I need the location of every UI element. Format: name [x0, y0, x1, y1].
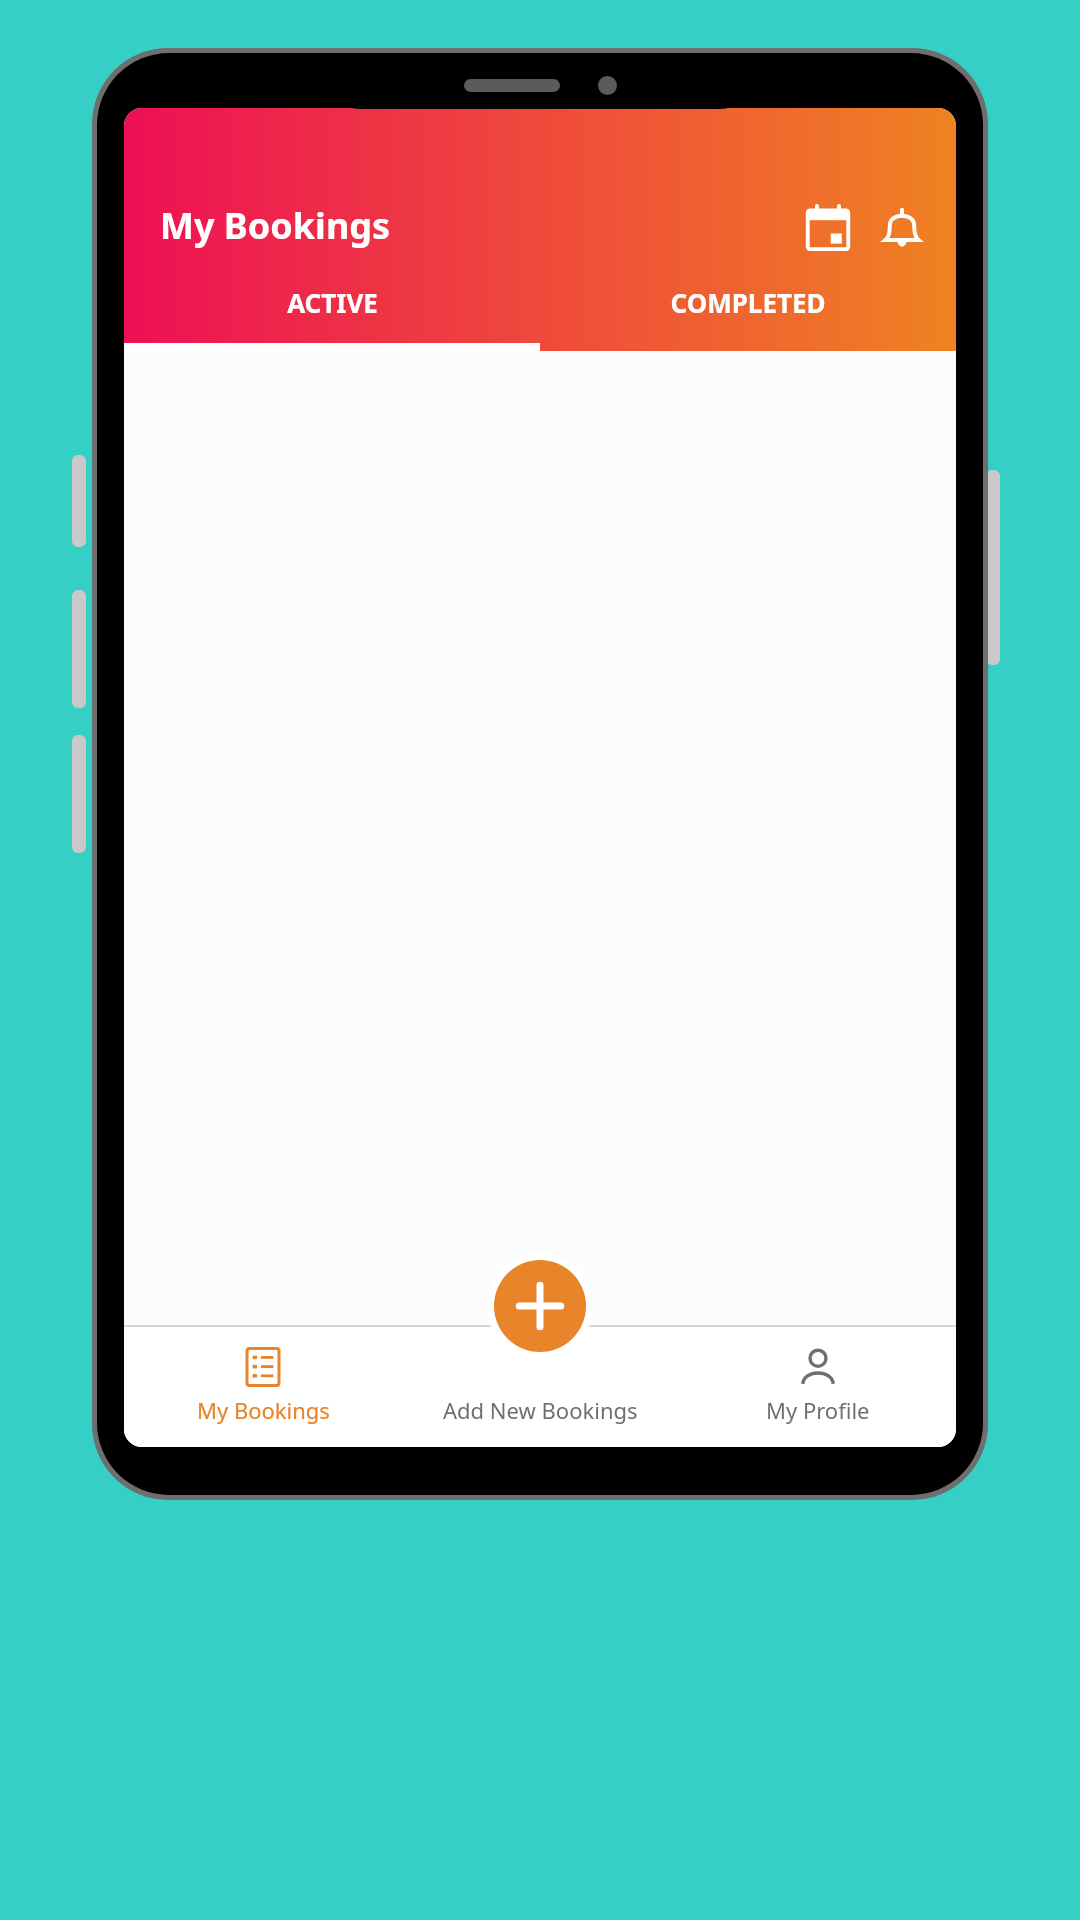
button[interactable]: Calendar	[802, 202, 854, 254]
staticText: COMPLETED	[670, 285, 826, 320]
button[interactable]: Add New Bookings	[402, 1325, 679, 1447]
staticText: ACTIVE	[287, 285, 378, 320]
staticText: My Bookings	[197, 1395, 330, 1425]
button[interactable]: ACTIVE	[124, 268, 540, 351]
button[interactable]: COMPLETED	[540, 268, 956, 351]
button[interactable]: My Profile	[679, 1325, 956, 1447]
button[interactable]: Notifications	[876, 202, 928, 254]
staticText: My Bookings	[160, 201, 391, 250]
button[interactable]: My Bookings	[124, 1325, 402, 1447]
button[interactable]: Add booking	[494, 1260, 586, 1352]
staticText: My Profile	[766, 1395, 870, 1425]
staticText: Add New Bookings	[443, 1395, 638, 1425]
